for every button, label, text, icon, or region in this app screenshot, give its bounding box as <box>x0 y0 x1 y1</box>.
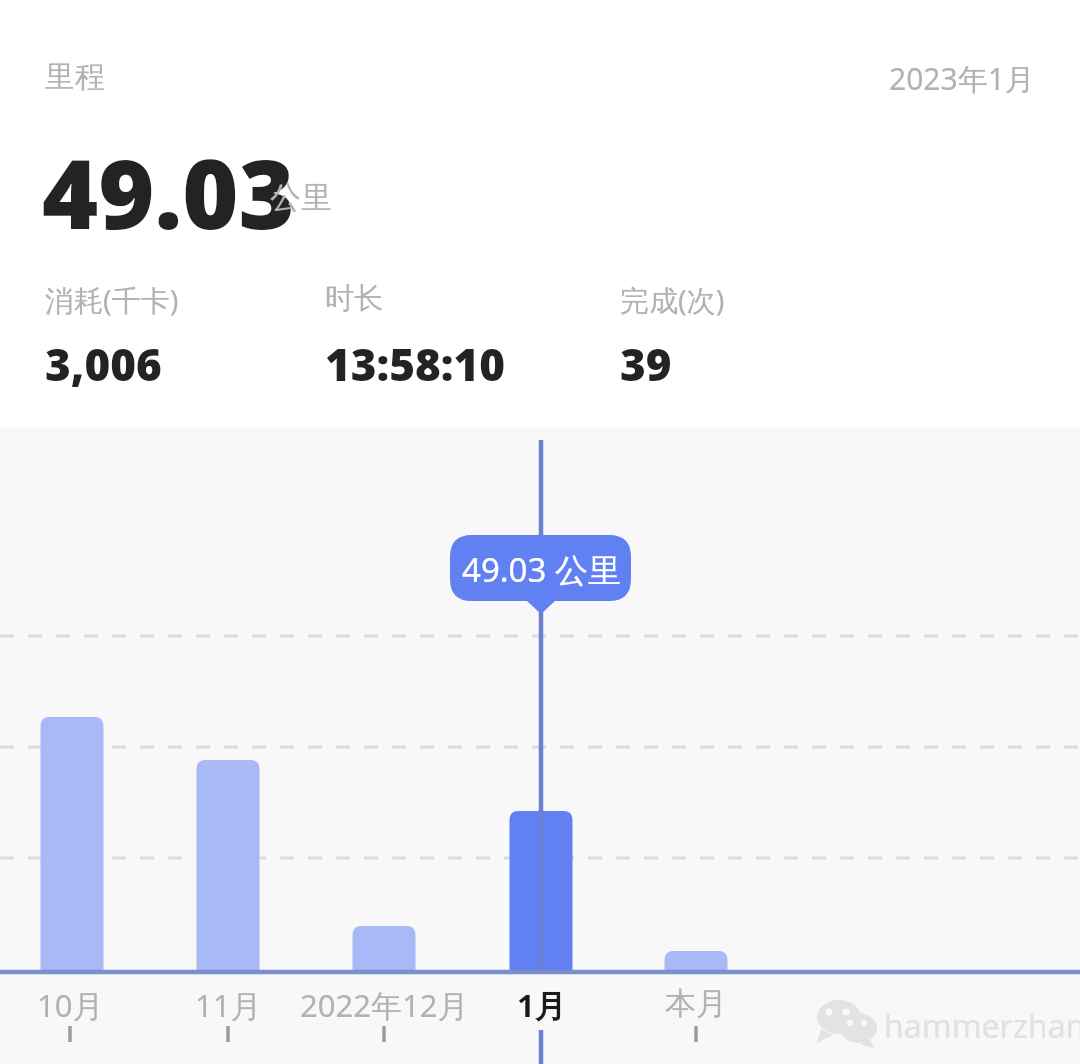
staticText: 2022年12月 <box>300 984 469 1026</box>
staticText: 39 <box>620 334 672 394</box>
button[interactable]: 里程 49.03 公里 统计 <box>0 0 1080 428</box>
staticText: 里程 <box>45 58 105 96</box>
staticText: hammerzhang <box>884 1004 1080 1048</box>
staticText: 13:58:10 <box>325 334 506 394</box>
staticText: 49.03 <box>42 126 295 257</box>
button[interactable]: 2022年12月 <box>313 960 470 1064</box>
button[interactable]: 10月 <box>0 960 157 1064</box>
button[interactable]: 本月 <box>626 960 783 1064</box>
staticText: 2023年1月 <box>889 58 1035 99</box>
staticText: 49.03 公里 <box>462 547 621 592</box>
staticText: 1月 <box>517 984 566 1026</box>
staticText: 公里 <box>270 178 332 217</box>
staticText: 时长 <box>325 280 383 317</box>
staticText: 本月 <box>665 984 727 1023</box>
staticText: 3,006 <box>45 334 162 394</box>
staticText: 消耗(千卡) <box>45 280 179 320</box>
button[interactable]: 1月 <box>470 960 627 1064</box>
staticText: 11月 <box>195 984 262 1026</box>
button[interactable]: 11月 <box>157 960 314 1064</box>
staticText: 完成(次) <box>620 280 725 320</box>
staticText: 10月 <box>37 984 104 1026</box>
